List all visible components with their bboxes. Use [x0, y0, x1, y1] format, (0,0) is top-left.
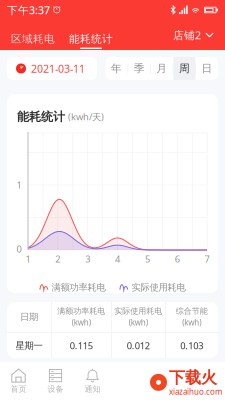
- staticText: 能耗统计: [69, 32, 113, 46]
- button[interactable]: 区域耗电: [4, 21, 62, 49]
- staticText: (kwh): [72, 317, 91, 328]
- staticText: 5: [145, 253, 150, 265]
- staticText: 星期二: [15, 366, 42, 378]
- staticText: 1: [16, 179, 21, 191]
- staticText: (kwh/天): [68, 110, 104, 123]
- button[interactable]: 能耗统计: [62, 21, 120, 49]
- button[interactable]: 店铺2: [168, 21, 219, 49]
- staticText: 0: [16, 243, 21, 255]
- staticText: 通知: [84, 384, 100, 394]
- button[interactable]: 2021-03-11: [7, 57, 97, 80]
- staticText: 星期一: [15, 340, 42, 351]
- staticText: 满额功率耗电: [57, 306, 105, 316]
- staticText: 下午3:37: [7, 3, 50, 17]
- button[interactable]: 月: [151, 57, 173, 80]
- button[interactable]: 日: [196, 57, 218, 80]
- staticText: 周: [179, 62, 190, 75]
- staticText: 实际使用耗电: [114, 306, 162, 316]
- staticText: 综合节能: [176, 306, 208, 316]
- staticText: 2021-03-11: [31, 61, 85, 76]
- staticText: 0.103: [180, 339, 203, 352]
- staticText: 店铺2: [173, 28, 201, 42]
- staticText: 实际使用耗电: [131, 281, 185, 293]
- staticText: 3: [85, 253, 90, 265]
- staticText: 区域耗电: [11, 32, 55, 46]
- button[interactable]: 设备: [37, 362, 74, 400]
- staticText: xiazaihuo.com: [169, 386, 222, 397]
- staticText: 月: [156, 62, 167, 75]
- button[interactable]: 年: [106, 57, 128, 80]
- staticText: 1: [25, 253, 30, 265]
- staticText: 满额功率耗电: [51, 281, 105, 293]
- button[interactable]: 周: [173, 57, 195, 80]
- staticText: 0.093: [180, 366, 203, 378]
- staticText: 首页: [10, 384, 26, 394]
- staticText: 7: [205, 253, 210, 265]
- staticText: 4: [115, 253, 120, 265]
- button[interactable]: 季: [128, 57, 150, 80]
- staticText: 年: [111, 62, 122, 75]
- staticText: 6: [175, 253, 180, 265]
- staticText: 日: [201, 62, 212, 75]
- button[interactable]: 通知: [74, 362, 111, 400]
- staticText: 能耗统计: [17, 109, 65, 124]
- staticText: (kwh): [129, 317, 148, 328]
- staticText: 0.115: [70, 339, 93, 352]
- staticText: 2: [55, 253, 60, 265]
- staticText: 季: [134, 62, 145, 75]
- staticText: 0.012: [127, 339, 150, 352]
- staticText: (kwh): [182, 317, 201, 328]
- staticText: 日期: [20, 311, 38, 323]
- staticText: 设备: [47, 384, 63, 394]
- button[interactable]: 首页: [0, 362, 37, 400]
- staticText: 0.102: [70, 366, 93, 378]
- staticText: 下载火: [169, 368, 217, 387]
